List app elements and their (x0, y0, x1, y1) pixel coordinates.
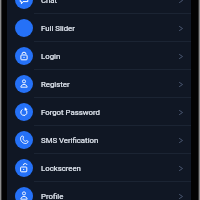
button[interactable]: Lockscreen (7, 154, 191, 182)
button[interactable]: Full Slider (7, 14, 191, 42)
button[interactable]: SMS Verification (7, 126, 191, 154)
staticText: Profile (41, 192, 64, 200)
staticText: Register (41, 80, 70, 89)
staticText: Login (41, 52, 61, 61)
button[interactable]: Register (7, 70, 191, 98)
button[interactable]: Forgot Password (7, 98, 191, 126)
staticText: SMS Verification (41, 136, 99, 145)
button[interactable]: Profile (7, 182, 191, 200)
staticText: Forgot Password (41, 108, 100, 117)
staticText: Lockscreen (41, 164, 81, 173)
button[interactable]: Login (7, 42, 191, 70)
staticText: Chat (41, 0, 58, 5)
button[interactable]: Chat (7, 0, 191, 14)
staticText: Full Slider (41, 24, 75, 33)
